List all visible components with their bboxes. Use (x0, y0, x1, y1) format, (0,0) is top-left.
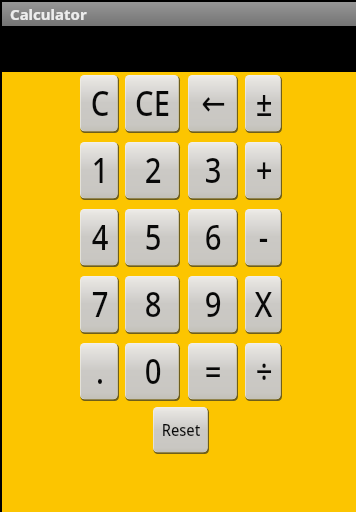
button[interactable]: Equals (188, 343, 238, 401)
staticText: ÷ (255, 348, 273, 394)
button[interactable]: Clear (80, 75, 119, 133)
staticText: + (255, 147, 273, 193)
staticText: 9 (204, 281, 222, 327)
button[interactable]: Five (125, 209, 180, 267)
staticText: . (96, 348, 104, 394)
button[interactable]: Eight (125, 276, 180, 334)
button[interactable]: Plus (245, 142, 282, 200)
button[interactable]: Divide (245, 343, 282, 401)
staticText: = (204, 348, 222, 394)
button[interactable]: Seven (80, 276, 119, 334)
staticText: 1 (91, 147, 109, 193)
button[interactable]: Minus (245, 209, 282, 267)
staticText: Reset (161, 418, 201, 441)
button[interactable]: Clear entry (125, 75, 180, 133)
button[interactable]: Two (125, 142, 180, 200)
staticText: 3 (204, 147, 222, 193)
button[interactable]: Backspace (188, 75, 238, 133)
staticText: 0 (144, 348, 162, 394)
staticText: - (259, 214, 268, 260)
button[interactable]: Multiply (245, 276, 282, 334)
staticText: ← (201, 83, 226, 123)
staticText: 8 (144, 281, 162, 327)
staticText: CE (135, 80, 170, 126)
staticText: X (254, 281, 273, 327)
button[interactable]: Nine (188, 276, 238, 334)
button[interactable]: Six (188, 209, 238, 267)
staticText: 6 (204, 214, 222, 260)
button[interactable]: Zero (125, 343, 180, 401)
staticText: 7 (91, 281, 109, 327)
button[interactable]: Three (188, 142, 238, 200)
button[interactable]: Reset (153, 407, 209, 454)
button[interactable]: Decimal point (80, 343, 119, 401)
staticText: Calculator (10, 4, 87, 24)
staticText: C (90, 80, 109, 126)
staticText: ± (255, 80, 273, 126)
button[interactable]: Plus minus sign (245, 75, 282, 133)
staticText: 2 (144, 147, 162, 193)
button[interactable]: Four (80, 209, 119, 267)
staticText: 4 (91, 214, 109, 260)
staticText: 5 (144, 214, 162, 260)
button[interactable]: One (80, 142, 119, 200)
